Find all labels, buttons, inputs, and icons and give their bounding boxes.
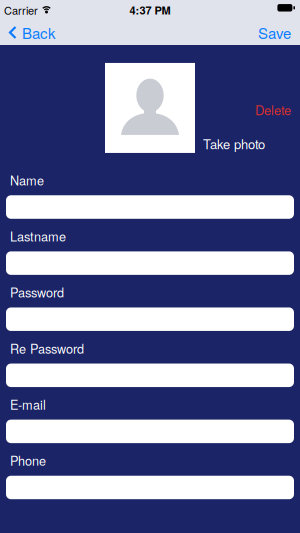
button[interactable]: Phone text field xyxy=(6,476,294,499)
staticText: E-mail xyxy=(10,395,46,413)
button[interactable]: Take photo xyxy=(203,134,265,153)
staticText: Re Password xyxy=(10,339,84,357)
staticText: Name xyxy=(10,171,44,189)
staticText: Delete xyxy=(255,100,291,119)
staticText: Save xyxy=(258,22,291,43)
button[interactable]: Delete xyxy=(255,100,300,119)
staticText: Back xyxy=(22,22,56,43)
staticText: Password xyxy=(10,283,64,301)
button[interactable]: Back xyxy=(0,22,56,43)
button[interactable]: Name text field xyxy=(6,195,294,219)
staticText: 4:37 PM xyxy=(129,2,170,18)
button[interactable]: E-mail text field xyxy=(6,420,294,443)
button[interactable]: Lastname text field xyxy=(6,251,294,275)
staticText: Phone xyxy=(10,451,46,469)
staticText: Lastname xyxy=(10,227,66,245)
button[interactable]: Save xyxy=(258,22,300,43)
staticText: Carrier xyxy=(4,2,38,18)
staticText: Take photo xyxy=(203,134,265,153)
button[interactable]: Re Password text field xyxy=(6,363,294,387)
button[interactable]: Password text field xyxy=(6,307,294,331)
